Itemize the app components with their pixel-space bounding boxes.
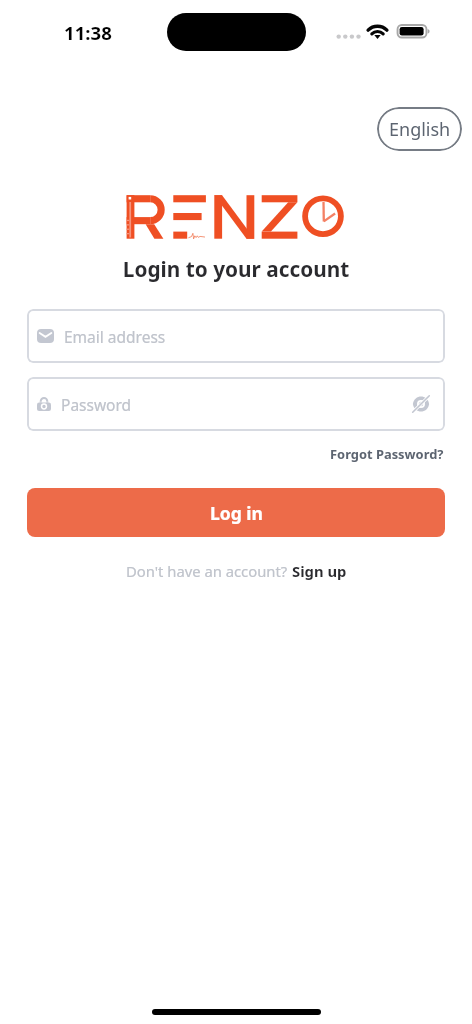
button[interactable]: Email address <box>27 309 445 363</box>
staticText: Sign up <box>292 561 347 581</box>
staticText: Log in <box>210 501 263 525</box>
button[interactable]: Log in <box>27 488 445 537</box>
button[interactable]: Forgot Password? <box>330 445 444 463</box>
staticText: Password <box>61 394 409 415</box>
staticText: Forgot Password? <box>330 445 444 463</box>
button[interactable]: Sign up <box>292 561 347 581</box>
staticText: Login to your account <box>0 255 472 283</box>
staticText: Don't have an account? <box>126 561 292 581</box>
button[interactable]: Password <box>27 377 445 431</box>
staticText: Email address <box>64 326 433 347</box>
staticText: 11:38 <box>64 20 112 45</box>
button[interactable]: Show password <box>409 392 433 416</box>
button[interactable]: English <box>377 107 462 151</box>
staticText: English <box>389 117 451 142</box>
